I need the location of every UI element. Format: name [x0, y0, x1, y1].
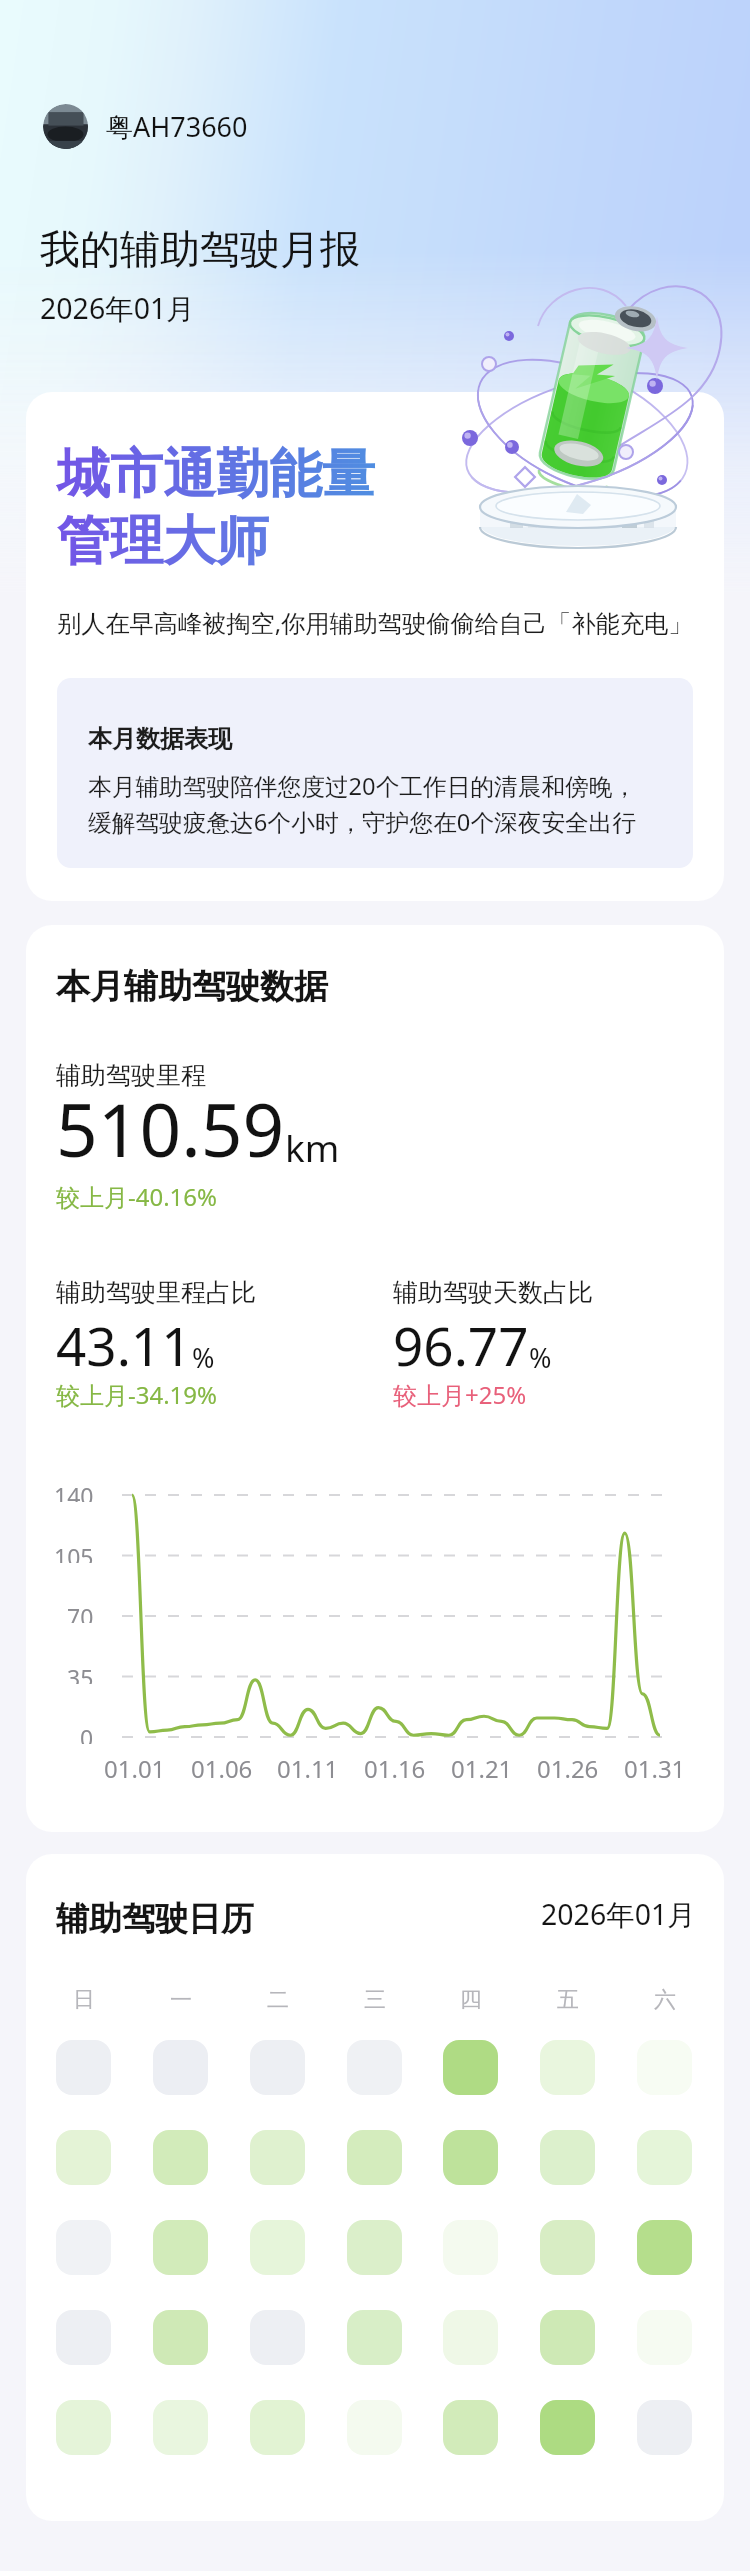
- button[interactable]: 1月33日: [443, 2400, 498, 2455]
- staticText: 辅助驾驶里程占比: [56, 1277, 256, 1308]
- button[interactable]: 1月26日: [443, 2310, 498, 2365]
- button[interactable]: 1月32日: [347, 2400, 402, 2455]
- button[interactable]: 1月4日: [347, 2040, 402, 2095]
- staticText: 96.77: [393, 1309, 529, 1381]
- staticText: 辅助驾驶里程: [56, 1060, 206, 1091]
- other: 车辆头像: [43, 104, 88, 149]
- staticText: 别人在早高峰被掏空,你用辅助驾驶偷偷给自己「补能充电」: [57, 606, 693, 639]
- button[interactable]: 1月8日: [56, 2130, 111, 2185]
- staticText: 六: [654, 1986, 676, 2014]
- button[interactable]: 1月25日: [347, 2310, 402, 2365]
- button[interactable]: 1月22日: [56, 2310, 111, 2365]
- staticText: 2026年01月: [541, 1895, 696, 1934]
- staticText: 140: [54, 1480, 94, 1502]
- staticText: 粤AH73660: [106, 108, 248, 145]
- staticText: 本月数据表现: [88, 724, 232, 754]
- button[interactable]: 1月16日: [153, 2220, 208, 2275]
- button[interactable]: 车辆头像: [43, 104, 264, 149]
- staticText: %: [529, 1339, 552, 1376]
- button[interactable]: 1月21日: [637, 2220, 692, 2275]
- staticText: 日: [73, 1986, 95, 2014]
- button[interactable]: 1月19日: [443, 2220, 498, 2275]
- button[interactable]: 1月3日: [250, 2040, 305, 2095]
- staticText: 01.26: [537, 1752, 599, 1785]
- staticText: 本月辅助驾驶陪伴您度过20个工作日的清晨和傍晚，: [88, 770, 637, 802]
- button[interactable]: 1月14日: [637, 2130, 692, 2185]
- staticText: 510.59: [56, 1079, 285, 1178]
- staticText: 二: [267, 1986, 289, 2014]
- staticText: 35: [67, 1662, 94, 1684]
- button[interactable]: 1月34日: [540, 2400, 595, 2455]
- staticText: 五: [557, 1986, 579, 2014]
- staticText: 辅助驾驶日历: [56, 1898, 254, 1940]
- button[interactable]: 1月30日: [153, 2400, 208, 2455]
- staticText: 辅助驾驶天数占比: [393, 1277, 593, 1308]
- button[interactable]: 1月12日: [443, 2130, 498, 2185]
- button[interactable]: 1月18日: [347, 2220, 402, 2275]
- button[interactable]: 1月5日: [443, 2040, 498, 2095]
- staticText: 01.21: [451, 1752, 513, 1785]
- button[interactable]: 1月9日: [153, 2130, 208, 2185]
- staticText: 缓解驾驶疲惫达6个小时，守护您在0个深夜安全出行: [88, 806, 637, 838]
- staticText: 105: [54, 1541, 94, 1563]
- button[interactable]: 1月20日: [540, 2220, 595, 2275]
- staticText: 较上月-40.16%: [56, 1180, 218, 1213]
- staticText: 三: [364, 1986, 386, 2014]
- staticText: 四: [460, 1986, 482, 2014]
- button[interactable]: 1月15日: [56, 2220, 111, 2275]
- staticText: 01.11: [277, 1752, 339, 1785]
- staticText: 01.06: [191, 1752, 253, 1785]
- staticText: %: [192, 1339, 215, 1376]
- staticText: km: [285, 1122, 340, 1172]
- staticText: 我的辅助驾驶月报: [40, 224, 360, 274]
- staticText: 43.11: [56, 1309, 192, 1381]
- button[interactable]: 1月24日: [250, 2310, 305, 2365]
- staticText: 01.01: [104, 1752, 166, 1785]
- button[interactable]: 1月23日: [153, 2310, 208, 2365]
- staticText: 01.16: [364, 1752, 426, 1785]
- staticText: 一: [170, 1986, 192, 2014]
- staticText: 较上月+25%: [393, 1378, 527, 1411]
- staticText: 01.31: [624, 1752, 686, 1785]
- button[interactable]: 1月11日: [347, 2130, 402, 2185]
- button[interactable]: 1月2日: [153, 2040, 208, 2095]
- button[interactable]: 本月辅助驾驶数据: [26, 925, 724, 1832]
- button[interactable]: 1月28日: [637, 2310, 692, 2365]
- staticText: 0: [80, 1722, 94, 1744]
- button[interactable]: 城市通勤能量: [26, 392, 724, 901]
- button[interactable]: 辅助驾驶日历: [26, 1854, 724, 2521]
- button[interactable]: 1月13日: [540, 2130, 595, 2185]
- button[interactable]: 1月17日: [250, 2220, 305, 2275]
- button[interactable]: 1月10日: [250, 2130, 305, 2185]
- button[interactable]: 1月27日: [540, 2310, 595, 2365]
- button[interactable]: 1月1日: [56, 2040, 111, 2095]
- button[interactable]: 1月35日: [637, 2400, 692, 2455]
- staticText: 70: [67, 1601, 94, 1623]
- staticText: 2026年01月: [40, 289, 195, 328]
- button[interactable]: 1月31日: [250, 2400, 305, 2455]
- button[interactable]: 1月7日: [637, 2040, 692, 2095]
- staticText: 较上月-34.19%: [56, 1378, 218, 1411]
- button[interactable]: 1月6日: [540, 2040, 595, 2095]
- staticText: 本月辅助驾驶数据: [56, 965, 328, 1008]
- staticText: 管理大师: [57, 508, 269, 575]
- button[interactable]: 1月29日: [56, 2400, 111, 2455]
- staticText: 城市通勤能量: [57, 441, 375, 508]
